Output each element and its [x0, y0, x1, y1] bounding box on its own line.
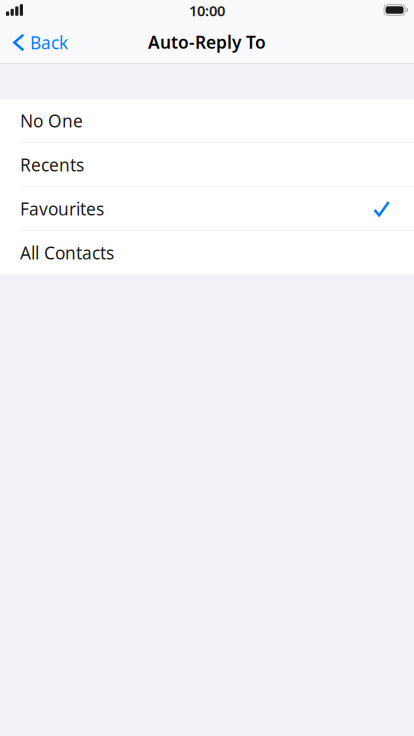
button[interactable]: All Contacts	[0, 231, 414, 274]
button[interactable]: Favourites	[0, 187, 414, 231]
staticText: Favourites	[20, 197, 104, 220]
staticText: Back	[30, 31, 68, 54]
button[interactable]: Back	[0, 24, 78, 64]
staticText: 10:00	[189, 1, 225, 20]
staticText: Recents	[20, 153, 84, 176]
staticText: No One	[20, 109, 83, 132]
staticText: Auto-Reply To	[148, 30, 266, 53]
staticText: All Contacts	[20, 241, 114, 264]
button[interactable]: Recents	[0, 143, 414, 187]
button[interactable]: No One	[0, 99, 414, 143]
